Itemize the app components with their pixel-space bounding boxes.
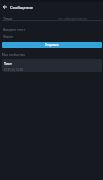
staticText: Тест xyxy=(4,61,12,66)
button[interactable]: Отправить xyxy=(2,42,102,48)
button[interactable]: Back xyxy=(0,2,10,12)
staticText: Введите текст xyxy=(3,27,26,31)
staticText: Мои сообщения xyxy=(2,53,25,57)
staticText: 01.01.25, 12:00 xyxy=(4,68,23,72)
staticText: Отправить xyxy=(45,43,59,47)
staticText: Файл xyxy=(3,34,13,39)
staticText: Тема xyxy=(3,16,13,21)
button[interactable]: Тест xyxy=(2,59,102,72)
staticText: Сообщение xyxy=(10,5,33,10)
staticText: не обязательно xyxy=(58,16,87,21)
